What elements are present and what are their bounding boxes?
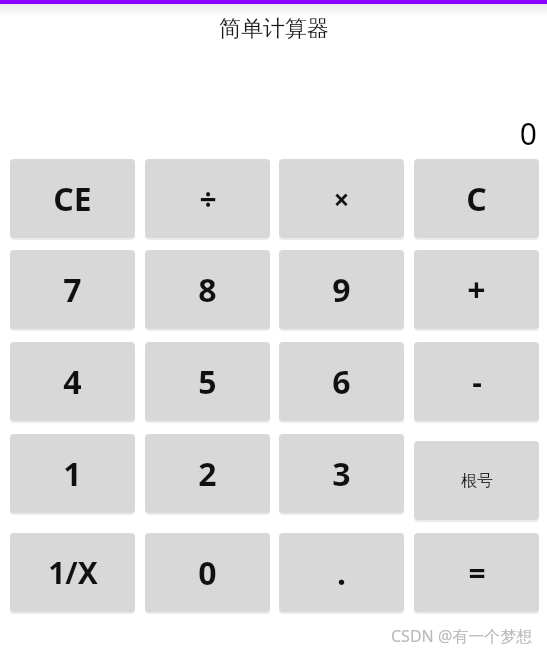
button[interactable]: . [279, 533, 404, 612]
staticText: 1 [63, 452, 82, 496]
button[interactable]: = [414, 533, 539, 612]
staticText: CE [53, 177, 92, 221]
staticText: 0 [198, 551, 217, 595]
staticText: . [337, 551, 346, 595]
button[interactable]: 4 [10, 342, 135, 421]
staticText: 根号 [461, 471, 493, 491]
button[interactable]: C [414, 159, 539, 238]
button[interactable]: 8 [145, 250, 270, 329]
staticText: 0 [519, 113, 537, 149]
button[interactable]: ÷ [145, 159, 270, 238]
staticText: 5 [198, 360, 217, 404]
button[interactable]: 7 [10, 250, 135, 329]
button[interactable]: 6 [279, 342, 404, 421]
button[interactable]: CE [10, 159, 135, 238]
staticText: CSDN @有一个梦想 [391, 625, 533, 647]
button[interactable]: 1/X [10, 533, 135, 612]
staticText: C [466, 177, 487, 221]
staticText: 3 [332, 452, 351, 496]
button[interactable]: 9 [279, 250, 404, 329]
button[interactable]: 3 [279, 434, 404, 513]
staticText: 7 [63, 268, 82, 312]
button[interactable]: 5 [145, 342, 270, 421]
button[interactable]: 2 [145, 434, 270, 513]
staticText: 9 [332, 268, 351, 312]
staticText: 4 [63, 360, 82, 404]
button[interactable]: 0 [145, 533, 270, 612]
button[interactable]: 1 [10, 434, 135, 513]
staticText: = [468, 552, 486, 593]
button[interactable]: + [414, 250, 539, 329]
staticText: - [472, 361, 482, 402]
button[interactable]: - [414, 342, 539, 421]
staticText: 1/X [48, 552, 98, 593]
staticText: × [333, 180, 350, 218]
staticText: 2 [198, 452, 217, 496]
button[interactable]: 根号 [414, 441, 539, 520]
staticText: + [467, 268, 486, 312]
staticText: 6 [332, 360, 351, 404]
button[interactable]: × [279, 159, 404, 238]
staticText: 简单计算器 [219, 15, 329, 43]
staticText: 8 [198, 268, 217, 312]
staticText: ÷ [199, 178, 217, 219]
